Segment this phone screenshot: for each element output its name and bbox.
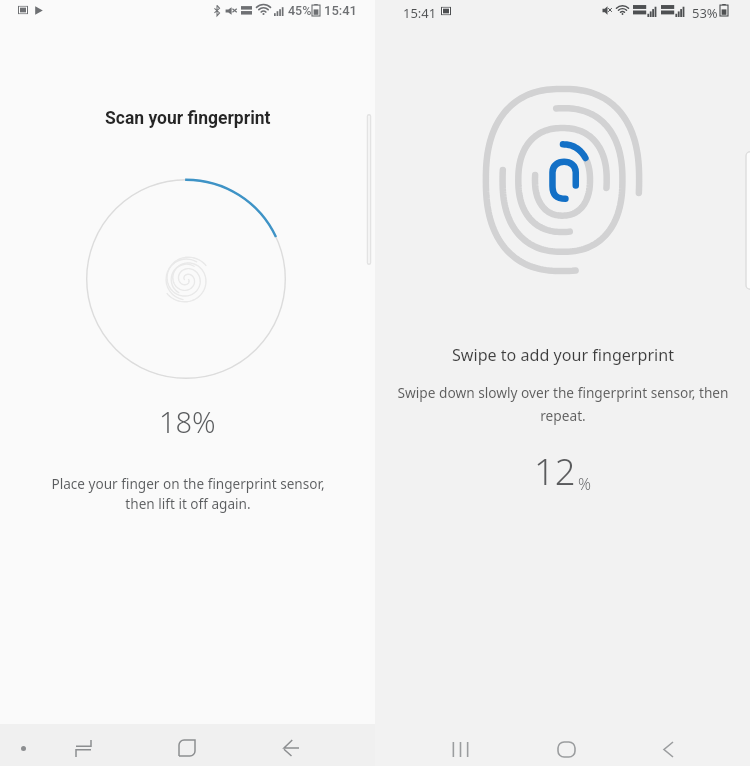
staticText: 53% (692, 4, 718, 22)
staticText: 12 (534, 446, 576, 496)
button[interactable]: Recent apps (64, 729, 102, 766)
button[interactable]: Recent apps (441, 730, 479, 766)
staticText: 18% (159, 402, 216, 441)
button[interactable]: Home (547, 730, 585, 766)
staticText: Swipe down slowly over the fingerprint s… (397, 383, 729, 425)
staticText: 15:41 (324, 3, 357, 18)
button[interactable]: Back (649, 730, 687, 766)
staticText: 15:41 (403, 4, 437, 22)
staticText: % (578, 473, 591, 495)
button[interactable]: Home (168, 729, 206, 766)
staticText: Swipe to add your fingerprint (452, 344, 674, 366)
staticText: 45% (288, 3, 312, 18)
button[interactable]: More options (4, 729, 42, 766)
staticText: Scan your fingerprint (105, 108, 271, 129)
button[interactable]: Back (272, 729, 310, 766)
staticText: Place your finger on the fingerprint sen… (51, 474, 325, 513)
